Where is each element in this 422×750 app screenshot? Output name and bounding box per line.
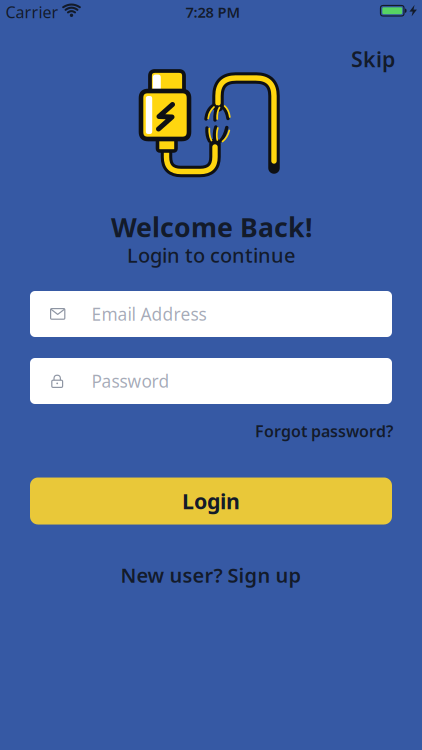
- staticText: Login to continue: [127, 242, 295, 268]
- button[interactable]: Login: [30, 477, 392, 524]
- staticText: Carrier: [5, 1, 58, 23]
- staticText: Skip: [351, 45, 395, 73]
- staticText: Password: [91, 369, 169, 392]
- button[interactable]: Email Address: [30, 291, 392, 337]
- staticText: 7:28 PM: [185, 2, 240, 22]
- staticText: Email Address: [91, 302, 206, 325]
- staticText: Login: [182, 487, 240, 515]
- button[interactable]: Password: [30, 358, 392, 404]
- button[interactable]: Forgot password?: [255, 420, 393, 442]
- staticText: Forgot password?: [255, 420, 393, 442]
- button[interactable]: New user? Sign up: [120, 562, 301, 588]
- staticText: Welcome Back!: [111, 209, 313, 245]
- staticText: New user? Sign up: [120, 562, 301, 588]
- button[interactable]: Skip: [351, 45, 395, 73]
